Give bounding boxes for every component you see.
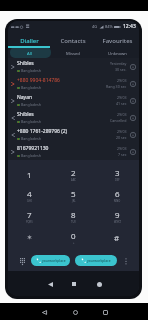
staticText: 5: [71, 188, 76, 199]
button[interactable]: Call details: [128, 96, 138, 106]
button[interactable]: Recents: [98, 305, 112, 319]
button[interactable]: Back: [44, 278, 56, 290]
staticText: yourworkplace: [87, 258, 111, 263]
staticText: 29/03: [117, 146, 127, 151]
button[interactable]: 81679921130: [8, 143, 139, 160]
button[interactable]: Recents: [93, 278, 105, 290]
staticText: 8: [71, 209, 76, 220]
staticText: Contacts: [60, 37, 86, 45]
button[interactable]: Missed: [51, 46, 95, 58]
button[interactable]: #: [95, 227, 139, 248]
button[interactable]: Favourites: [95, 32, 139, 46]
staticText: Shibles: [17, 60, 34, 67]
button[interactable]: 5: [51, 185, 95, 206]
button[interactable]: Contacts: [51, 32, 95, 46]
staticText: Nayan: [17, 94, 33, 101]
button[interactable]: Shibles: [8, 58, 139, 75]
staticText: 29/03: [117, 78, 127, 83]
staticText: Unknown: [108, 51, 127, 57]
staticText: MNO: [114, 199, 121, 203]
button[interactable]: Nayan: [8, 92, 139, 109]
staticText: Bangladesh: [21, 153, 41, 158]
button[interactable]: +880 1761-289796 (2): [8, 126, 139, 143]
staticText: 81679921130: [17, 145, 49, 152]
staticText: 1: [27, 169, 32, 180]
staticText: Bangladesh: [21, 68, 41, 73]
staticText: 4: [27, 188, 32, 199]
button[interactable]: 1: [8, 164, 51, 185]
button[interactable]: All: [8, 46, 51, 58]
staticText: PQRS: [26, 220, 33, 224]
button[interactable]: Shibles: [8, 109, 139, 126]
button[interactable]: Unknown: [95, 46, 139, 58]
staticText: WXYZ: [114, 220, 121, 224]
button[interactable]: More options: [120, 256, 131, 267]
staticText: GHI: [27, 199, 32, 203]
staticText: 9: [115, 209, 120, 220]
staticText: 6: [115, 188, 120, 199]
button[interactable]: Back: [37, 305, 51, 319]
button[interactable]: Home: [68, 278, 80, 290]
button[interactable]: 3: [95, 164, 139, 185]
staticText: 12:43: [123, 23, 136, 30]
button[interactable]: 0: [51, 227, 95, 248]
button[interactable]: Dialler: [8, 32, 51, 46]
staticText: Missed: [66, 51, 80, 57]
staticText: Dialler: [20, 37, 39, 45]
staticText: +: [73, 241, 75, 245]
staticText: #: [114, 232, 120, 243]
staticText: JKL: [72, 199, 76, 203]
button[interactable]: Home: [68, 305, 82, 319]
staticText: 4G: [92, 24, 98, 29]
staticText: 84%: [105, 24, 113, 29]
staticText: 0: [71, 230, 76, 241]
staticText: 3: [115, 167, 120, 178]
button[interactable]: Call details: [128, 79, 138, 89]
staticText: 41 sec: [116, 101, 127, 106]
button[interactable]: 4: [8, 185, 51, 206]
staticText: Bangladesh: [21, 102, 41, 107]
staticText: 7 sec: [118, 152, 127, 157]
button[interactable]: Call details: [128, 147, 138, 157]
staticText: 29/03: [117, 112, 127, 117]
staticText: Shibles: [17, 111, 34, 118]
staticText: 20 sec: [116, 135, 127, 140]
button[interactable]: yourworkplace: [75, 255, 117, 266]
button[interactable]: +880 9904-814786: [8, 75, 139, 92]
staticText: Rang 30 sec: [106, 84, 127, 89]
staticText: Favourites: [102, 37, 133, 45]
staticText: TUV: [71, 220, 76, 224]
staticText: +880 9904-814786: [17, 77, 60, 84]
staticText: Bangladesh: [21, 85, 41, 90]
staticText: ABC: [71, 178, 76, 182]
staticText: +880 1761-289796 (2): [17, 128, 68, 135]
button[interactable]: 9: [95, 206, 139, 227]
staticText: DEF: [115, 178, 120, 182]
staticText: 29/03: [117, 95, 127, 100]
button[interactable]: Hide keypad: [17, 256, 28, 267]
staticText: Bangladesh: [21, 119, 41, 124]
button[interactable]: Call details: [128, 130, 138, 140]
staticText: yourworkplace: [42, 258, 66, 263]
button[interactable]: 6: [95, 185, 139, 206]
staticText: 29/03: [117, 129, 127, 134]
staticText: Bangladesh: [21, 136, 41, 141]
button[interactable]: 2: [51, 164, 95, 185]
button[interactable]: yourworkplace: [31, 255, 70, 266]
button[interactable]: 8: [51, 206, 95, 227]
staticText: 30 sec.: [115, 67, 127, 72]
button[interactable]: Call details: [128, 113, 138, 123]
staticText: All: [27, 51, 32, 57]
staticText: 2: [71, 167, 76, 178]
button[interactable]: ∗: [8, 227, 51, 248]
staticText: ∗: [27, 233, 33, 242]
button[interactable]: 7: [8, 206, 51, 227]
button[interactable]: Call details: [128, 62, 138, 72]
staticText: 7: [27, 209, 32, 220]
staticText: Yesterday: [110, 61, 127, 66]
staticText: Cancelled: [110, 118, 127, 123]
